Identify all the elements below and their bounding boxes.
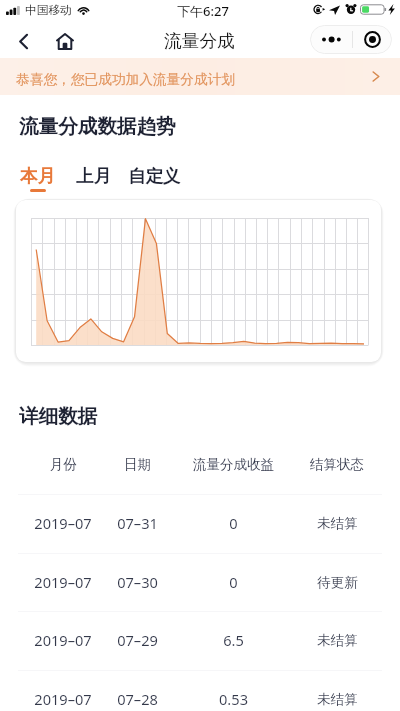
staticText: 恭喜您，您已成功加入流量分成计划	[16, 71, 235, 88]
button[interactable]: 2019–07	[0, 670, 400, 711]
staticText: 结算状态	[310, 456, 364, 473]
staticText: 流量分成收益	[193, 456, 274, 473]
staticText: 流量分成	[164, 30, 235, 52]
staticText: 0	[229, 572, 238, 592]
staticText: 上月	[76, 165, 111, 187]
staticText: 2019–07	[34, 630, 92, 650]
button[interactable]: 恭喜您，您已成功加入流量分成计划	[0, 58, 400, 95]
staticText: 0.53	[219, 689, 248, 709]
staticText: 未结算	[317, 515, 358, 532]
staticText: 07–30	[117, 572, 158, 592]
staticText: 6.5	[223, 630, 244, 650]
staticText: 流量分成数据趋势	[19, 114, 176, 139]
button[interactable]: 本月	[18, 165, 57, 192]
staticText: 中国移动	[25, 3, 72, 18]
button[interactable]: Home	[50, 27, 79, 56]
staticText: 2019–07	[34, 572, 92, 592]
staticText: 自定义	[128, 165, 181, 187]
staticText: 待更新	[317, 574, 358, 591]
button[interactable]: More	[310, 25, 352, 54]
staticText: 下午6:27	[177, 2, 229, 20]
staticText: 详细数据	[19, 404, 98, 429]
button[interactable]: Close mini program	[353, 25, 392, 54]
button[interactable]: 2019–07	[0, 611, 400, 670]
staticText: 日期	[124, 456, 151, 473]
button[interactable]: 上月	[74, 165, 113, 189]
button[interactable]: 2019–07	[0, 553, 400, 612]
staticText: 月份	[50, 456, 77, 473]
staticText: 未结算	[317, 691, 358, 708]
staticText: 未结算	[317, 632, 358, 649]
staticText: 2019–07	[34, 513, 92, 533]
staticText: 2019–07	[34, 689, 92, 709]
staticText: 07–28	[117, 689, 158, 709]
button[interactable]: 2019–07	[0, 494, 400, 553]
button[interactable]: Back	[9, 27, 38, 56]
staticText: 0	[229, 513, 238, 533]
button[interactable]: 自定义	[126, 165, 183, 189]
staticText: 07–31	[117, 513, 158, 533]
staticText: 本月	[20, 165, 55, 187]
staticText: 07–29	[117, 630, 158, 650]
